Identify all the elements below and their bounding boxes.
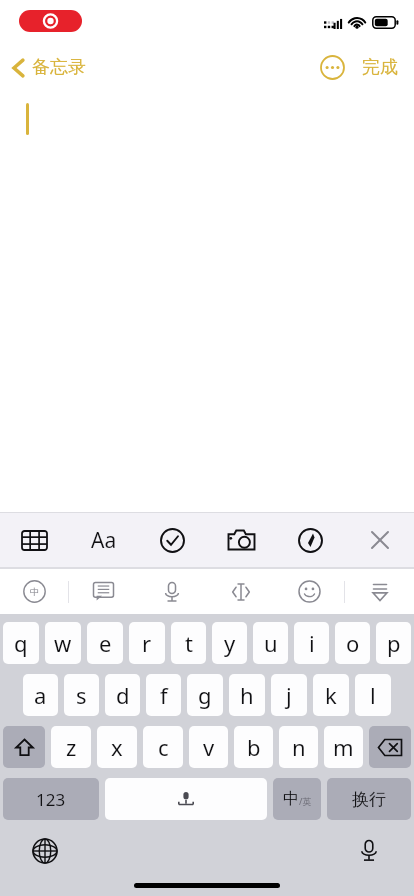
staticText: q	[14, 628, 28, 658]
button[interactable]: i	[294, 622, 329, 664]
button[interactable]: m	[324, 726, 363, 768]
staticText: x	[111, 732, 123, 762]
staticText: k	[325, 680, 337, 710]
staticText: y	[224, 628, 236, 658]
staticText: 123	[36, 788, 66, 811]
button[interactable]: Text formatting	[69, 513, 138, 567]
button[interactable]: Emoji	[275, 569, 344, 614]
button[interactable]: e	[87, 622, 123, 664]
button[interactable]: o	[335, 622, 370, 664]
button[interactable]: v	[189, 726, 228, 768]
button[interactable]: Shift	[3, 726, 45, 768]
button[interactable]: y	[212, 622, 247, 664]
button[interactable]: 换行	[327, 778, 411, 820]
button[interactable]: q	[3, 622, 39, 664]
staticText: j	[286, 680, 292, 710]
button[interactable]: z	[51, 726, 91, 768]
button[interactable]: f	[146, 674, 181, 716]
button[interactable]: w	[45, 622, 81, 664]
button[interactable]: Camera	[207, 513, 276, 567]
staticText: o	[346, 628, 360, 658]
staticText: t	[185, 628, 193, 658]
staticText: n	[292, 732, 306, 762]
staticText: 完成	[362, 56, 398, 79]
staticText: 中	[283, 789, 299, 809]
button[interactable]: Input method	[0, 569, 68, 614]
button[interactable]: 123	[3, 778, 99, 820]
staticText: u	[264, 628, 278, 658]
button[interactable]: Move cursor	[206, 569, 275, 614]
button[interactable]: k	[313, 674, 349, 716]
button[interactable]: 中	[273, 778, 321, 820]
button[interactable]: Switch keyboard	[28, 834, 62, 868]
staticText: f	[160, 680, 168, 710]
button[interactable]: l	[355, 674, 391, 716]
staticText: v	[203, 732, 215, 762]
staticText: b	[247, 732, 261, 762]
staticText: s	[76, 680, 87, 710]
staticText: w	[54, 628, 72, 658]
staticText: Aa	[91, 526, 117, 555]
button[interactable]: 完成	[358, 51, 402, 84]
button[interactable]: s	[64, 674, 99, 716]
staticText: d	[116, 680, 130, 710]
button[interactable]: g	[187, 674, 223, 716]
staticText: e	[99, 628, 112, 658]
button[interactable]: x	[97, 726, 137, 768]
staticText: m	[333, 732, 354, 762]
button[interactable]	[0, 90, 414, 512]
button[interactable]: r	[129, 622, 165, 664]
button[interactable]: Dictation	[352, 834, 386, 868]
button[interactable]: Close	[345, 513, 414, 567]
staticText: p	[387, 628, 401, 658]
staticText: z	[66, 732, 77, 762]
staticText: a	[34, 680, 47, 710]
staticText: 备忘录	[32, 56, 86, 79]
button[interactable]: n	[279, 726, 318, 768]
button[interactable]: h	[229, 674, 265, 716]
button[interactable]: 备忘录	[8, 52, 94, 83]
button[interactable]: p	[376, 622, 411, 664]
button[interactable]: t	[171, 622, 206, 664]
button[interactable]: Space, voice input	[105, 778, 267, 820]
staticText: /英	[299, 795, 312, 807]
staticText: r	[142, 628, 152, 658]
staticText: g	[198, 680, 212, 710]
button[interactable]: More options	[314, 49, 350, 85]
button[interactable]: a	[23, 674, 58, 716]
staticText: h	[240, 680, 254, 710]
button[interactable]: Backspace	[369, 726, 411, 768]
button[interactable]: u	[253, 622, 288, 664]
button[interactable]: Screen recording active	[19, 10, 82, 32]
button[interactable]: Insert table	[0, 513, 69, 567]
staticText: c	[158, 732, 169, 762]
button[interactable]: b	[234, 726, 273, 768]
button[interactable]: Checklist	[138, 513, 207, 567]
button[interactable]: Hide suggestions	[345, 569, 414, 614]
staticText: 中	[30, 586, 39, 597]
button[interactable]: c	[143, 726, 183, 768]
button[interactable]: Markup	[276, 513, 345, 567]
button[interactable]: d	[105, 674, 140, 716]
staticText: l	[370, 680, 376, 710]
button[interactable]: Messages	[69, 569, 137, 614]
staticText: i	[309, 628, 315, 658]
button[interactable]: Voice input	[137, 569, 206, 614]
staticText: 换行	[352, 789, 386, 810]
button[interactable]: j	[271, 674, 307, 716]
